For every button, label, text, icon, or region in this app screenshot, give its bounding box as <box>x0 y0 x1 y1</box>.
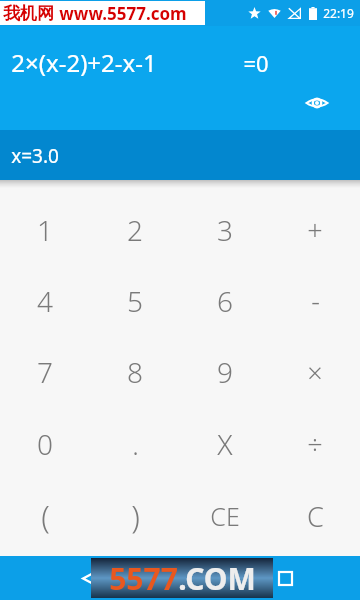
staticText: . <box>132 426 139 463</box>
button[interactable]: x=3.0 <box>0 130 360 180</box>
staticText: 8 <box>127 353 143 391</box>
staticText: 1 <box>37 211 53 249</box>
staticText: 4 <box>37 282 53 320</box>
staticText: - <box>311 282 320 319</box>
button[interactable]: Recent apps <box>267 560 303 596</box>
staticText: www.5577.com <box>59 2 187 25</box>
staticText: 5577 <box>109 558 178 598</box>
staticText: X <box>217 425 233 463</box>
staticText: 22:19 <box>323 5 354 21</box>
button[interactable]: 4 <box>0 265 90 336</box>
button[interactable]: Show steps <box>303 89 331 117</box>
staticText: 5 <box>127 282 143 320</box>
button[interactable]: Back <box>72 560 108 596</box>
button[interactable]: CE <box>180 480 270 552</box>
staticText: 2×(x-2)+2-x-1 <box>11 46 157 79</box>
staticText: 我机网 <box>3 3 54 24</box>
button[interactable]: 8 <box>90 336 180 408</box>
staticText: .COM <box>178 558 256 598</box>
button[interactable]: ÷ <box>270 408 360 480</box>
button[interactable]: - <box>270 265 360 336</box>
staticText: + <box>307 211 323 248</box>
staticText: 3 <box>217 211 233 249</box>
staticText: 9 <box>217 353 233 391</box>
button[interactable]: 2 <box>90 194 180 265</box>
button[interactable]: Home <box>162 560 198 596</box>
button[interactable]: 0 <box>0 408 90 480</box>
staticText: C <box>307 498 324 535</box>
button[interactable]: ) <box>90 480 180 552</box>
button[interactable]: 6 <box>180 265 270 336</box>
button[interactable]: X <box>180 408 270 480</box>
button[interactable]: × <box>270 336 360 408</box>
staticText: 7 <box>37 353 53 391</box>
button[interactable]: 2×(x-2)+2-x-1 <box>11 46 157 79</box>
staticText: ( <box>41 495 50 537</box>
button[interactable]: 3 <box>180 194 270 265</box>
button[interactable]: C <box>270 480 360 552</box>
staticText: 6 <box>217 282 233 320</box>
staticText: CE <box>210 499 240 533</box>
staticText: ) <box>131 495 140 537</box>
staticText: × <box>307 354 323 391</box>
staticText: 2 <box>127 211 143 249</box>
staticText: 0 <box>37 425 53 463</box>
button[interactable]: =0 <box>243 48 269 78</box>
button[interactable]: ( <box>0 480 90 552</box>
button[interactable]: 5 <box>90 265 180 336</box>
staticText: x=3.0 <box>11 143 59 169</box>
staticText: ÷ <box>307 426 323 463</box>
button[interactable]: 7 <box>0 336 90 408</box>
staticText: =0 <box>243 48 269 78</box>
button[interactable]: 1 <box>0 194 90 265</box>
button[interactable]: 9 <box>180 336 270 408</box>
button[interactable]: + <box>270 194 360 265</box>
